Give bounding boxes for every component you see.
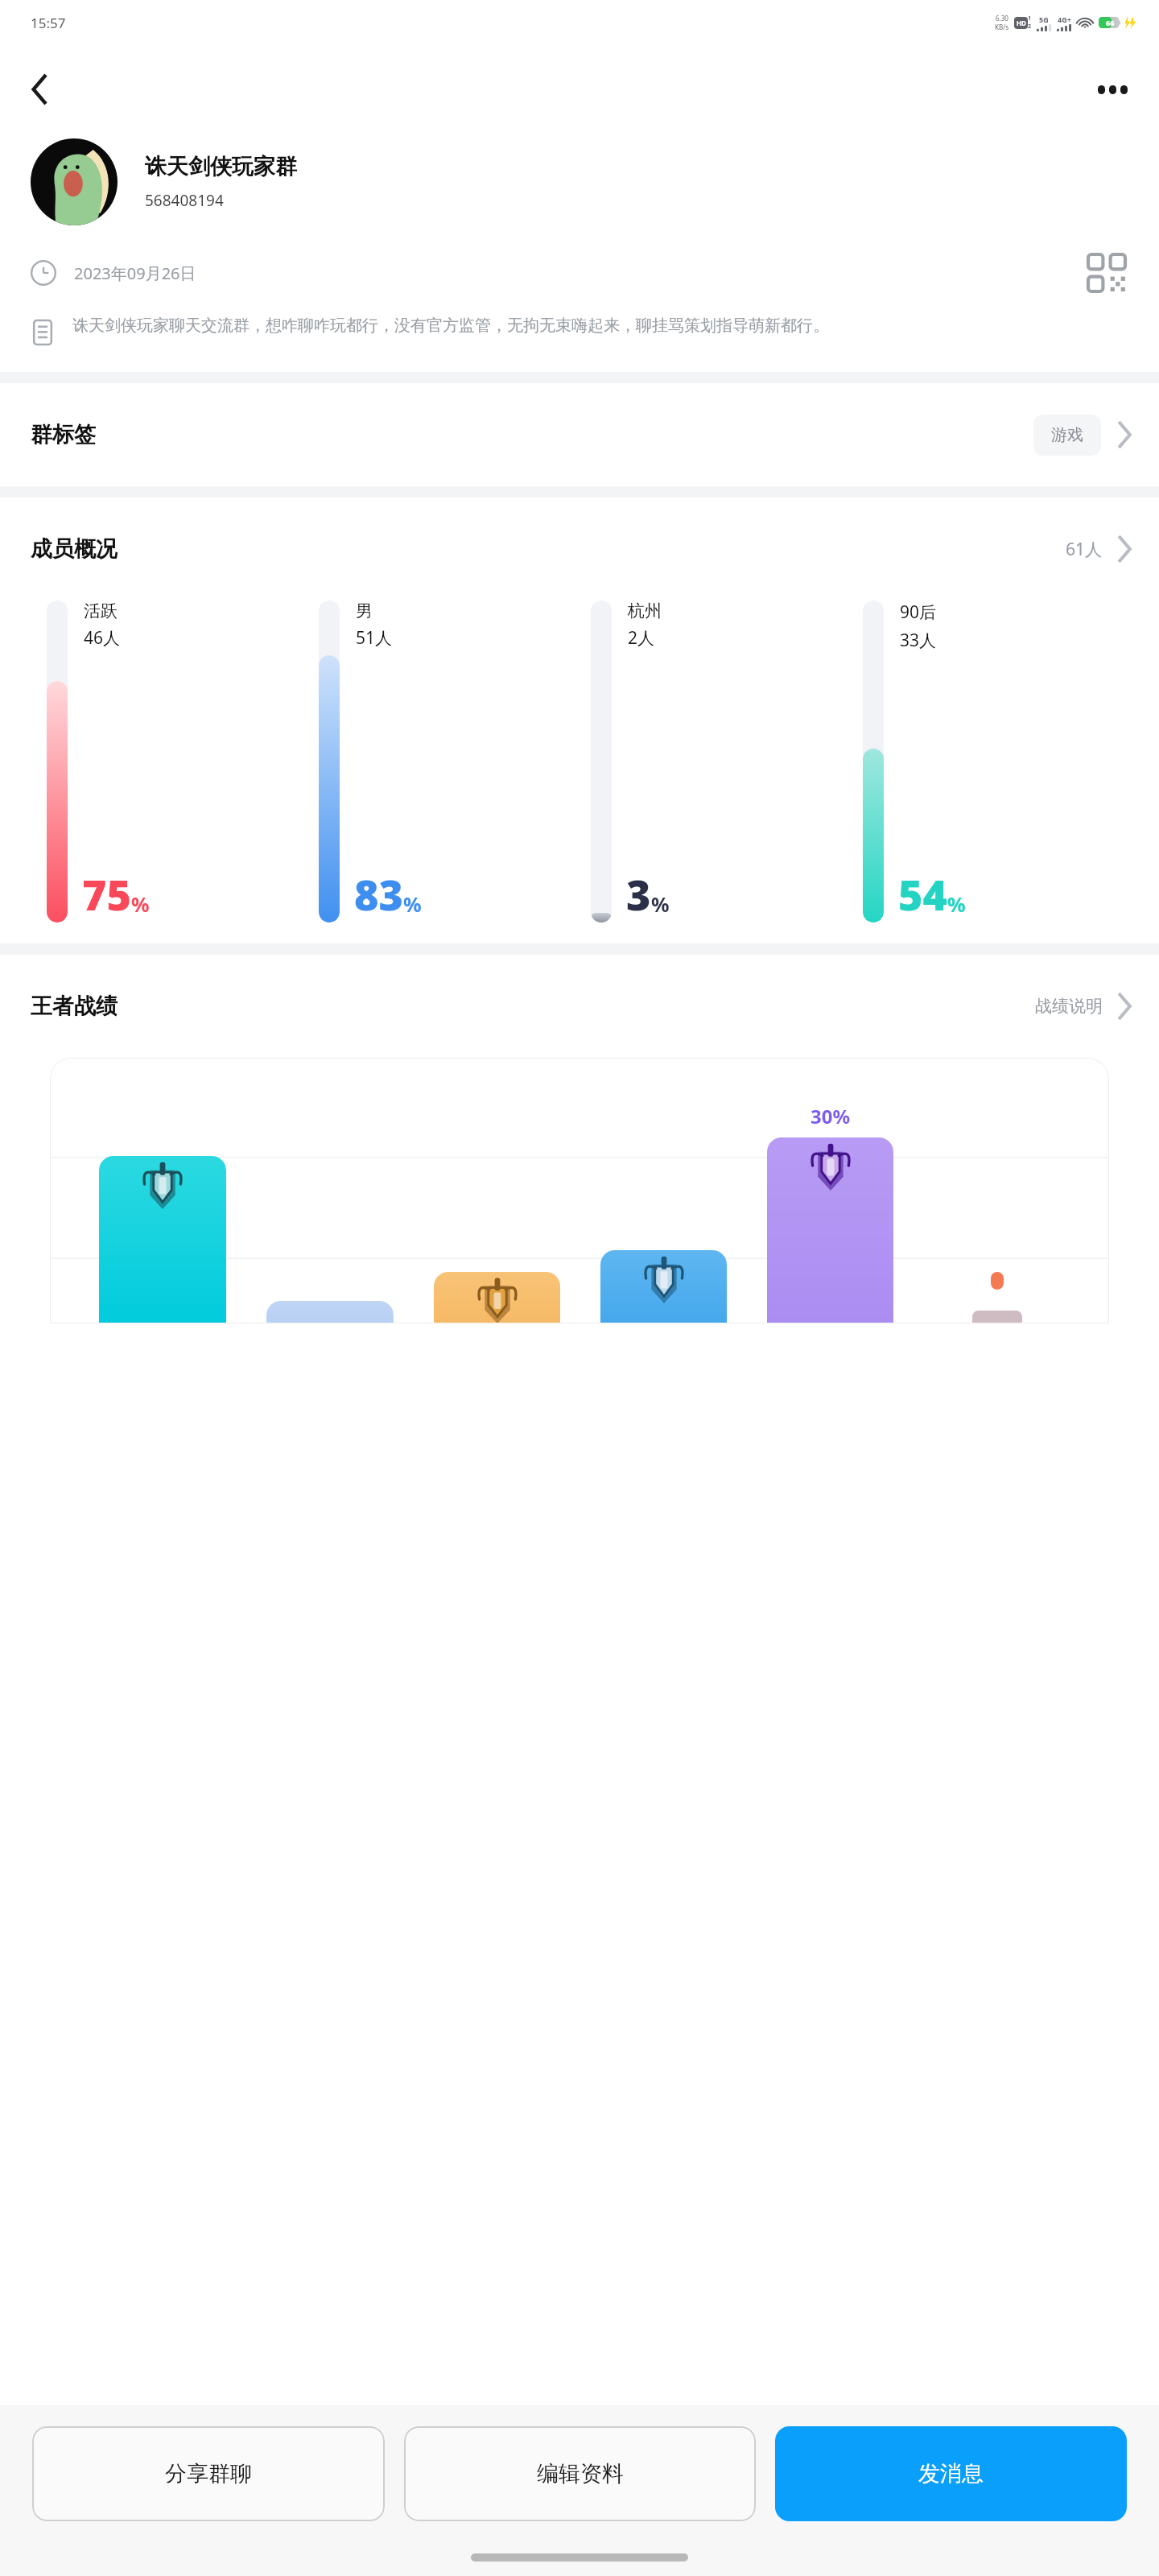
staticText: 5G	[1039, 14, 1049, 24]
staticText: 活跃	[84, 601, 118, 621]
button[interactable]: Back	[14, 64, 66, 115]
button[interactable]: 发消息	[775, 2426, 1127, 2521]
staticText: 成员概况	[31, 535, 118, 563]
staticText: 游戏	[1051, 425, 1083, 445]
staticText: 男	[356, 601, 373, 621]
staticText: 王者战绩	[31, 993, 118, 1020]
staticText: %	[131, 890, 150, 918]
staticText: 75	[82, 865, 131, 923]
button[interactable]: 群标签	[0, 383, 1159, 486]
staticText: 30%	[810, 1103, 851, 1129]
staticText: 51人	[356, 626, 393, 650]
staticText: 编辑资料	[537, 2460, 624, 2487]
staticText: 15:57	[31, 14, 66, 32]
staticText: 诛天剑侠玩家群	[145, 153, 297, 180]
staticText: 46人	[84, 626, 121, 650]
staticText: 群标签	[31, 421, 96, 448]
staticText: 61人	[1066, 538, 1103, 561]
staticText: 2	[1028, 23, 1032, 31]
staticText: 90后	[900, 601, 937, 624]
staticText: 568408194	[145, 190, 224, 211]
staticText: 2023年09月26日	[74, 262, 196, 284]
staticText: %	[403, 890, 422, 918]
staticText: 1	[1028, 14, 1032, 23]
button[interactable]: 王者战绩	[0, 955, 1159, 1058]
staticText: 3	[626, 865, 651, 923]
staticText: 33人	[900, 629, 937, 652]
staticText: 4G+	[1058, 14, 1071, 24]
staticText: 6.30	[996, 14, 1008, 23]
button[interactable]: More options	[1087, 64, 1138, 115]
button[interactable]: 编辑资料	[404, 2426, 756, 2521]
staticText: %	[651, 890, 670, 918]
staticText: 54	[898, 865, 947, 923]
staticText: 83	[354, 865, 403, 923]
staticText: 发消息	[918, 2460, 984, 2487]
staticText: 2人	[628, 626, 655, 650]
staticText: 66	[1106, 18, 1115, 27]
staticText: KB/s	[995, 23, 1008, 31]
button[interactable]: Group QR code	[1083, 250, 1130, 296]
button[interactable]	[31, 138, 118, 225]
staticText: 分享群聊	[165, 2460, 252, 2487]
staticText: %	[947, 890, 966, 918]
staticText: 战绩说明	[1035, 996, 1103, 1017]
staticText: HD	[1017, 19, 1026, 27]
staticText: 杭州	[628, 601, 662, 621]
button[interactable]: 成员概况	[0, 497, 1159, 601]
button[interactable]: 分享群聊	[32, 2426, 385, 2521]
staticText: 诛天剑侠玩家聊天交流群，想咋聊咋玩都行，没有官方监管，无拘无束嗨起来，聊挂骂策划…	[72, 316, 829, 336]
